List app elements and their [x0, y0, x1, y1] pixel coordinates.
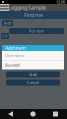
staticText: Cancel	[27, 80, 39, 85]
staticText: Username	[5, 53, 24, 58]
staticText: Add	[4, 20, 11, 26]
button[interactable]: Add	[2, 20, 13, 26]
button[interactable]: Cancel	[6, 79, 60, 85]
staticText: Logging Sample	[8, 4, 46, 11]
staticText: Clr	[2, 33, 8, 39]
staticText: 12:00	[56, 0, 65, 5]
button[interactable]: Pick item	[9, 28, 64, 34]
staticText: Pick item	[28, 28, 44, 34]
button[interactable]: Home	[22, 109, 44, 119]
button[interactable]: Add	[6, 71, 60, 77]
staticText: Add item	[5, 44, 26, 52]
staticText: Find me	[24, 11, 43, 19]
staticText: Add	[29, 72, 36, 77]
button[interactable]: Back	[0, 109, 22, 119]
button[interactable]: Recent apps	[44, 109, 67, 119]
button[interactable]: Clr	[1, 33, 9, 39]
button[interactable]: Menu	[2, 5, 6, 9]
staticText: Succeed	[5, 62, 19, 68]
